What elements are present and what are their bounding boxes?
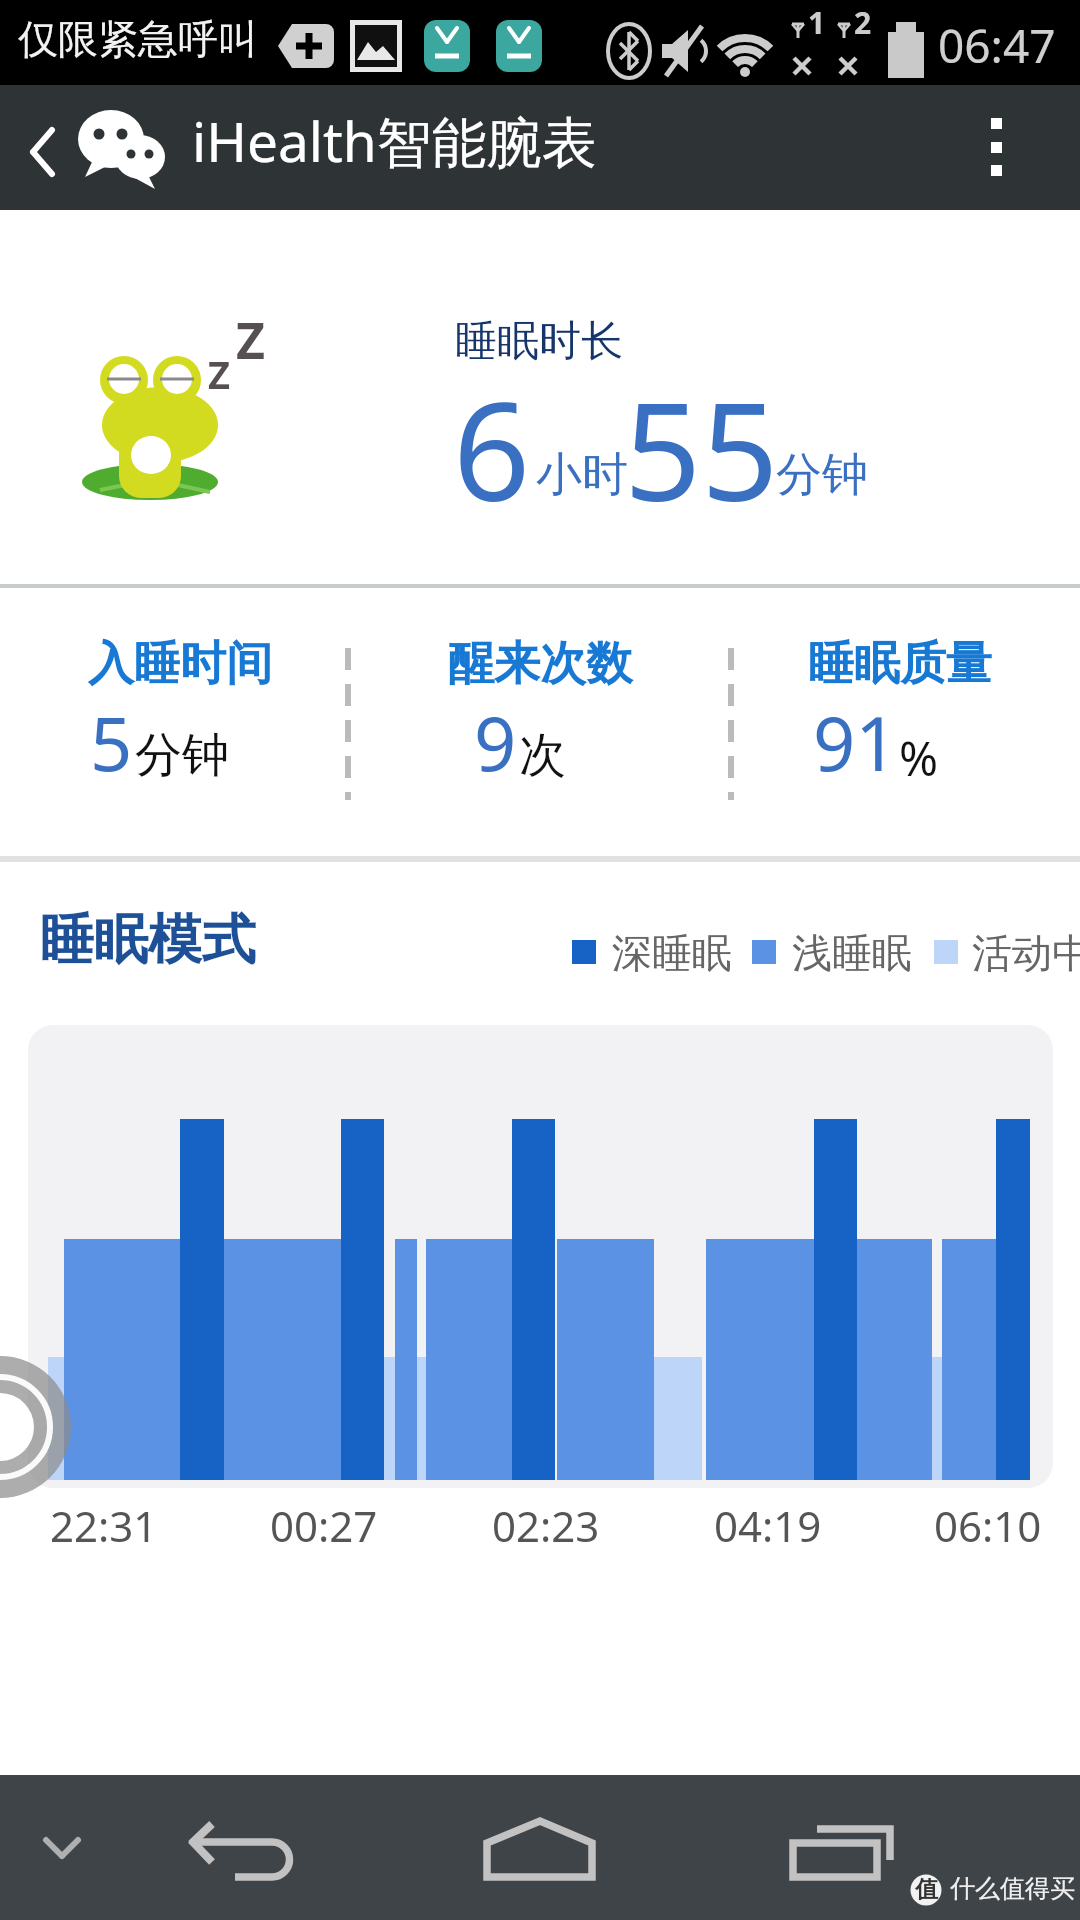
staticText: 00:27 — [270, 1497, 378, 1554]
staticText: 02:23 — [492, 1497, 600, 1554]
staticText: 5 — [90, 692, 133, 793]
staticText: 浅睡眠 — [792, 928, 912, 978]
button[interactable] — [780, 1810, 900, 1890]
staticText: iHealth智能腕表 — [192, 103, 597, 178]
staticText: 分钟 — [135, 726, 229, 785]
staticText: 55 — [624, 357, 779, 541]
staticText: 入睡时间 — [0, 635, 360, 693]
staticText: 06:47 — [938, 14, 1056, 77]
button[interactable] — [480, 1810, 600, 1890]
button[interactable] — [10, 110, 70, 185]
staticText: 91 — [813, 692, 898, 793]
staticText: 睡眠质量 — [720, 635, 1080, 693]
button[interactable] — [960, 100, 1040, 195]
button[interactable] — [25, 1815, 100, 1870]
staticText: 22:31 — [50, 1497, 158, 1554]
staticText: 1 — [808, 2, 826, 43]
staticText: 2 — [854, 2, 872, 43]
staticText: 9 — [474, 692, 517, 793]
staticText: 04:19 — [714, 1497, 822, 1554]
staticText: % — [899, 726, 939, 790]
staticText: 小时 — [536, 446, 628, 504]
staticText: 睡眠模式 — [40, 906, 256, 974]
staticText: 睡眠时长 — [455, 315, 623, 368]
staticText: 次 — [519, 726, 566, 785]
staticText: 仅限紧急呼叫 — [18, 14, 258, 64]
button[interactable] — [180, 1810, 300, 1890]
staticText: 6 — [453, 357, 531, 541]
staticText: 醒来次数 — [360, 635, 720, 693]
staticText: 什么值得买 — [950, 1873, 1075, 1904]
staticText: 分钟 — [776, 446, 868, 504]
staticText: Z — [236, 306, 265, 374]
staticText: Z — [208, 348, 231, 400]
staticText: 06:10 — [934, 1497, 1042, 1554]
staticText: 值 — [915, 1875, 938, 1904]
staticText: 深睡眠 — [612, 928, 732, 978]
staticText: 活动中 — [972, 928, 1080, 978]
